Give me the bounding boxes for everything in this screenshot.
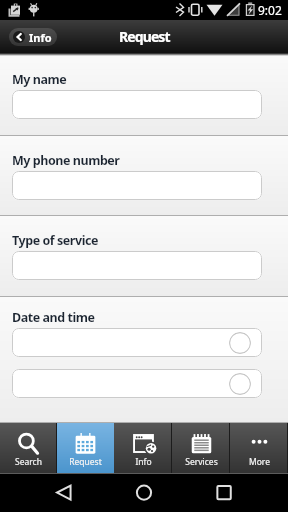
staticText: My phone number [12, 152, 120, 169]
staticText: Info [135, 456, 152, 468]
button[interactable]: Info [114, 423, 172, 474]
staticText: More [249, 456, 270, 468]
button[interactable]: Search [0, 423, 57, 474]
staticText: Type of service [12, 232, 98, 249]
button[interactable]: Pick date [229, 373, 251, 395]
staticText: 9:02 [258, 2, 282, 18]
button[interactable]: Pick date [12, 328, 262, 357]
button[interactable]: Pick date [12, 369, 262, 398]
button[interactable]: Services [172, 423, 230, 474]
staticText: Request [69, 456, 102, 468]
staticText: My name [12, 71, 67, 88]
button[interactable]: Back [0, 474, 95, 512]
button[interactable] [12, 171, 262, 200]
button[interactable]: Pick date [229, 332, 251, 354]
staticText: Info [29, 30, 52, 45]
button[interactable] [12, 251, 262, 280]
button[interactable]: Request [57, 423, 114, 474]
staticText: Services [185, 456, 218, 468]
button[interactable]: Info [9, 28, 57, 46]
staticText: Request [119, 27, 170, 46]
button[interactable]: More [230, 423, 288, 474]
button[interactable] [12, 90, 262, 119]
staticText: Search [15, 456, 42, 468]
staticText: Date and time [12, 309, 95, 326]
